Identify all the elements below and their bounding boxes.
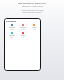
staticText: 88k — [10, 37, 13, 38]
button[interactable]: Errors — [18, 31, 28, 38]
staticText: Revenue — [9, 27, 15, 29]
staticText: 1.2% — [33, 29, 36, 30]
staticText: Sessions — [9, 35, 15, 37]
staticText: Signups — [20, 27, 26, 29]
button[interactable]: Signups — [18, 23, 28, 30]
staticText: before a new build — [22, 4, 43, 7]
staticText: Errors — [21, 35, 25, 37]
staticText: 14 — [22, 37, 24, 38]
button[interactable]: Revenue — [6, 23, 17, 30]
staticText: Churn — [32, 27, 37, 29]
staticText: Two questions I always ask — [18, 2, 46, 5]
staticText: Dashboard — [6, 20, 17, 23]
button[interactable]: Churn — [29, 23, 39, 30]
button[interactable]: Sessions — [6, 31, 17, 38]
staticText: a short checklist that helps — [21, 9, 44, 11]
staticText: keep the scope honest — [22, 11, 42, 13]
staticText: 3 210 — [21, 29, 25, 30]
staticText: 12.4k — [10, 29, 14, 30]
